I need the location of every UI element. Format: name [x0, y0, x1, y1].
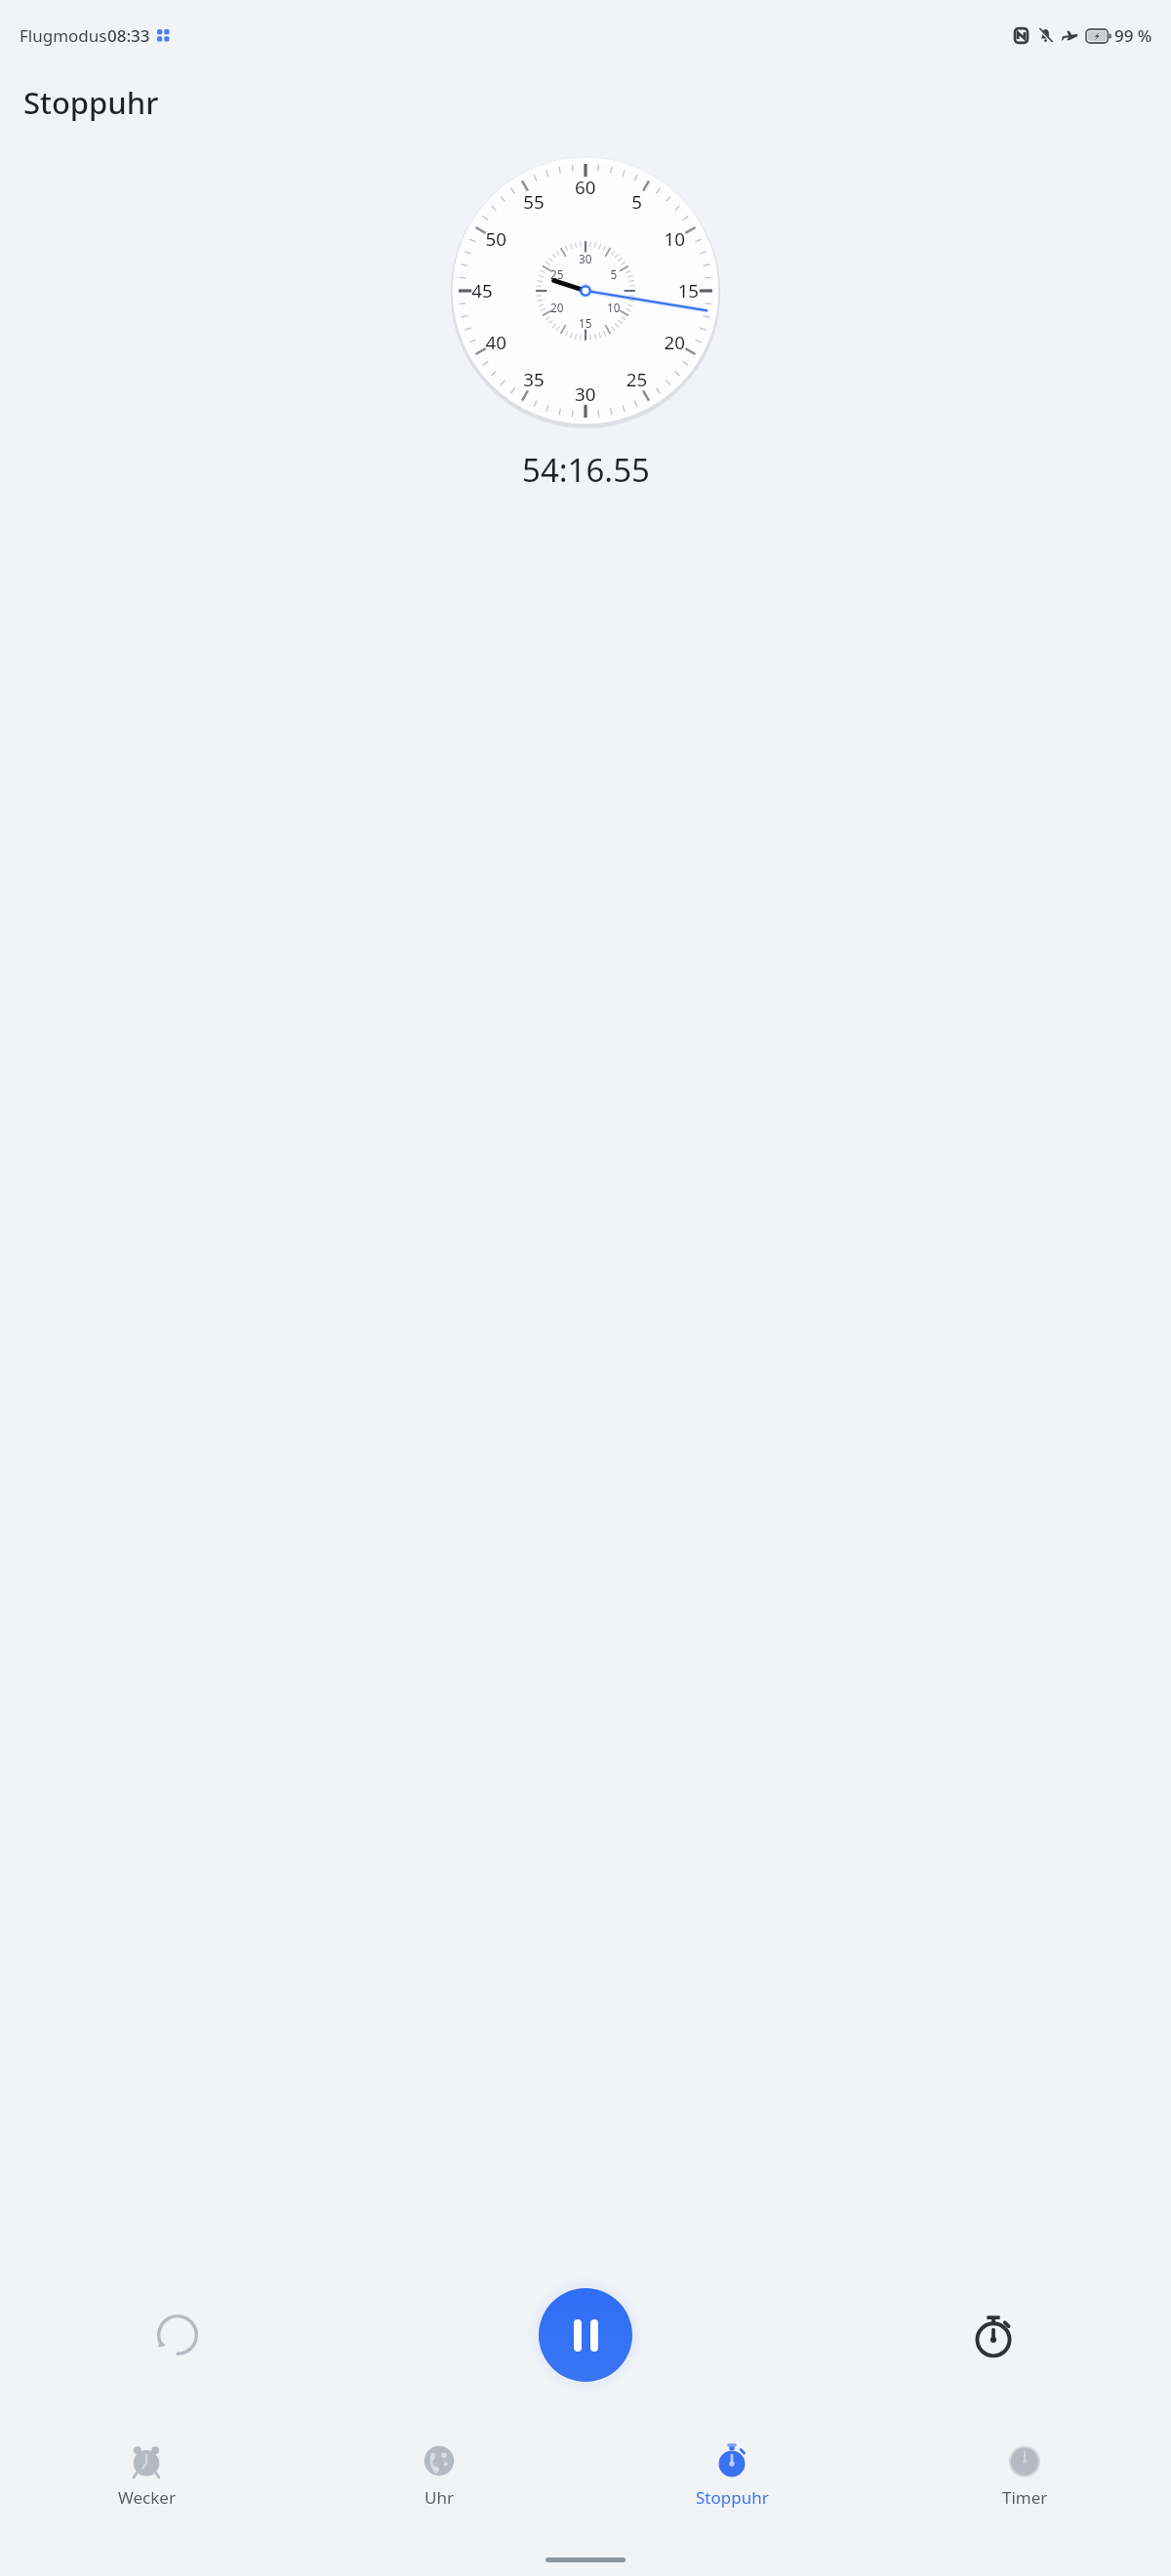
button[interactable]: Uhr [293, 2431, 585, 2546]
button[interactable]: Zurücksetzen [146, 2304, 209, 2366]
button[interactable]: Runde [962, 2304, 1025, 2366]
button[interactable]: Wecker [0, 2431, 293, 2546]
staticText: 99 % [1114, 24, 1152, 47]
button[interactable]: Stoppuhr [585, 2431, 878, 2546]
staticText: Flugmodus [20, 24, 107, 47]
staticText: Wecker [118, 2486, 176, 2509]
staticText: Stoppuhr [696, 2486, 769, 2509]
staticText: Stoppuhr [23, 82, 159, 123]
button[interactable]: Timer [878, 2431, 1171, 2546]
staticText: Uhr [424, 2486, 454, 2509]
staticText: 54:16.55 [522, 448, 650, 492]
staticText: Timer [1002, 2486, 1048, 2509]
staticText: 08:33 [107, 24, 150, 47]
button[interactable]: Pause [539, 2288, 632, 2382]
